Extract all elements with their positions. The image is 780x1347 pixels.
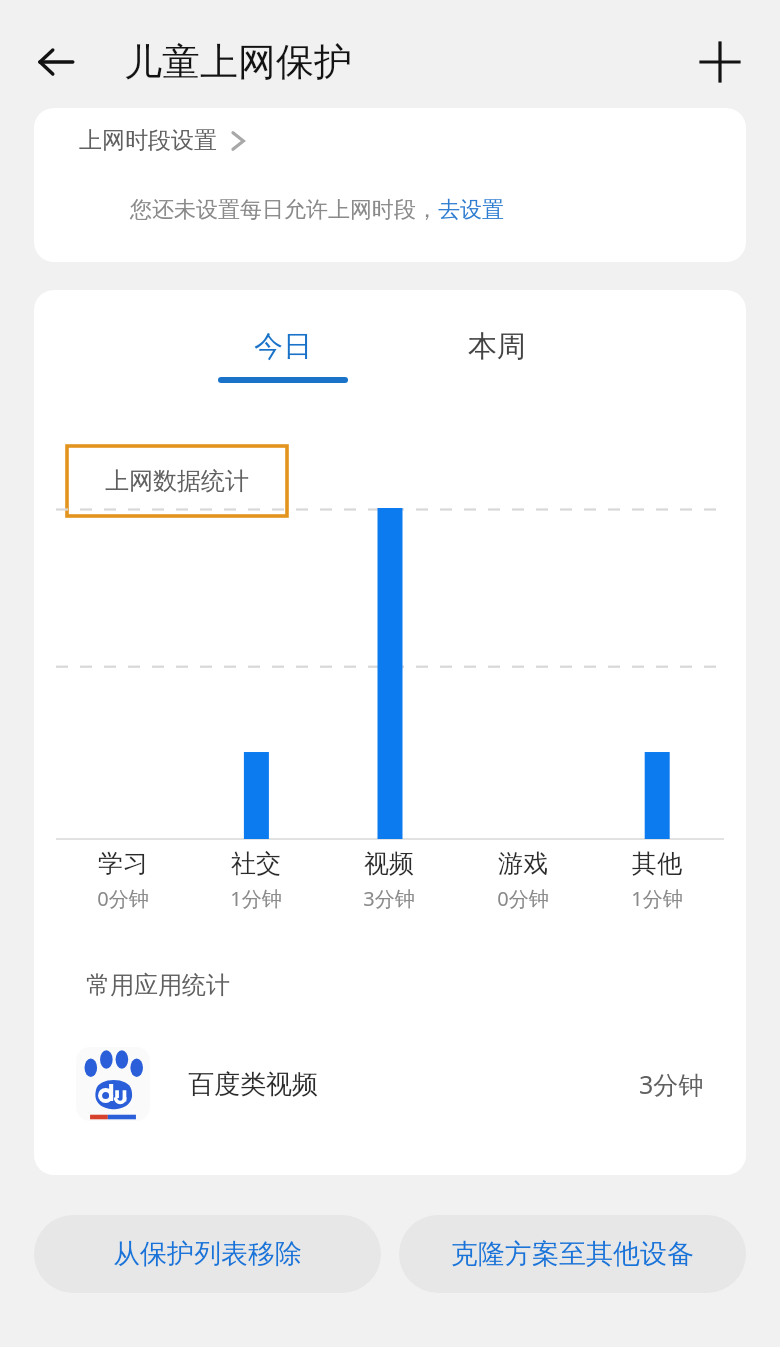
staticText: 百度类视频 — [188, 1068, 318, 1101]
staticText: 本周 — [468, 328, 526, 365]
button[interactable]: 上网时段设置 — [34, 108, 746, 262]
button[interactable]: Back — [20, 26, 92, 98]
button[interactable]: 今日 — [217, 328, 349, 383]
staticText: 0分钟 — [97, 885, 149, 912]
staticText: 上网时段设置 — [79, 126, 217, 155]
staticText: 1分钟 — [230, 885, 282, 912]
button[interactable]: 本周 — [431, 328, 563, 383]
staticText: 常用应用统计 — [86, 970, 230, 1000]
button[interactable]: 克隆方案至其他设备 — [399, 1215, 746, 1293]
staticText: 从保护列表移除 — [113, 1237, 302, 1271]
staticText: 其他 — [632, 848, 682, 879]
button[interactable]: 百度类视频 — [34, 1032, 746, 1136]
staticText: 克隆方案至其他设备 — [451, 1237, 694, 1271]
button[interactable]: Add — [686, 28, 754, 96]
staticText: 上网数据统计 — [105, 466, 249, 496]
button[interactable]: 上网时段设置 — [79, 126, 247, 155]
staticText: 视频 — [364, 848, 414, 879]
button[interactable]: 去设置 — [438, 196, 504, 224]
staticText: 游戏 — [498, 848, 548, 879]
staticText: 社交 — [231, 848, 281, 879]
staticText: 3分钟 — [639, 1067, 704, 1101]
staticText: 1分钟 — [631, 885, 683, 912]
staticText: 0分钟 — [497, 885, 549, 912]
staticText: 今日 — [254, 328, 312, 365]
staticText: 儿童上网保护 — [124, 38, 352, 86]
staticText: 3分钟 — [363, 885, 415, 912]
button[interactable]: 从保护列表移除 — [34, 1215, 381, 1293]
staticText: 您还未设置每日允许上网时段， — [130, 196, 438, 224]
staticText: 去设置 — [438, 196, 504, 224]
staticText: 学习 — [98, 848, 148, 879]
